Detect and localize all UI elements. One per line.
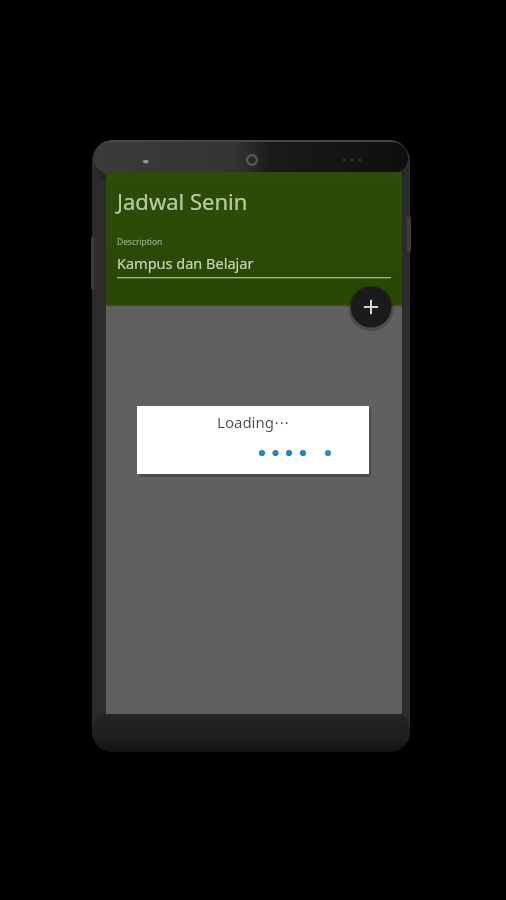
button[interactable]: Loading	[137, 406, 369, 474]
button[interactable]	[117, 232, 391, 280]
button[interactable]: Add schedule	[351, 287, 392, 328]
